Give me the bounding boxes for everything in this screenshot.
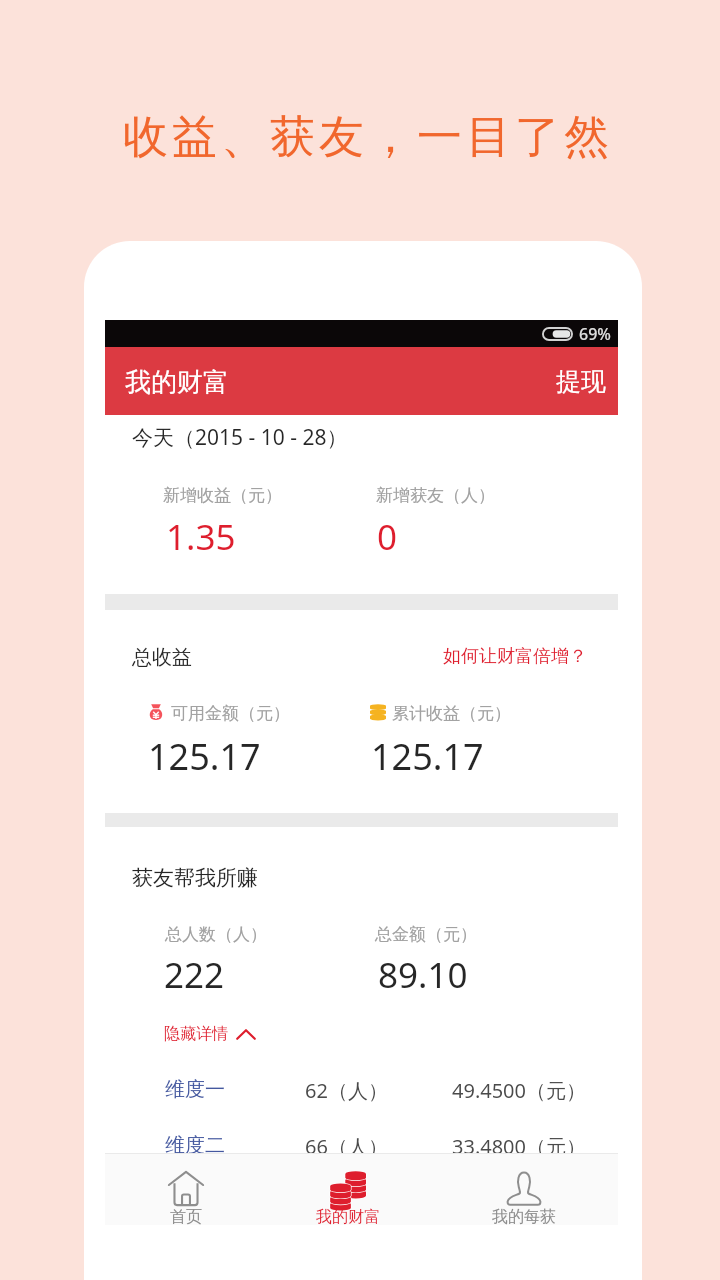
- button[interactable]: 提现: [530, 350, 618, 413]
- staticText: 维度一: [165, 1077, 225, 1102]
- staticText: 我的财富: [125, 366, 229, 399]
- staticText: 获友帮我所赚: [132, 865, 258, 891]
- staticText: 我的财富: [316, 1207, 380, 1225]
- staticText: 222: [164, 951, 225, 999]
- staticText: 总金额（元）: [375, 924, 477, 945]
- button[interactable]: 我的财富: [263, 1154, 433, 1225]
- staticText: 1.35: [166, 513, 236, 561]
- staticText: 33.4800（元）: [452, 1133, 586, 1160]
- staticText: 49.4500（元）: [452, 1077, 586, 1104]
- staticText: 收益、获友，一目了然: [8, 109, 720, 166]
- staticText: 今天（2015 - 10 - 28）: [132, 423, 348, 452]
- staticText: 提现: [556, 366, 606, 397]
- staticText: 125.17: [148, 732, 261, 781]
- staticText: 如何让财富倍增？: [443, 645, 587, 668]
- staticText: 89.10: [378, 951, 468, 999]
- staticText: 62（人）: [305, 1077, 388, 1104]
- button[interactable]: 如何让财富倍增？: [443, 645, 587, 668]
- button[interactable]: 隐藏详情: [164, 1024, 256, 1044]
- staticText: 我的每获: [492, 1207, 556, 1225]
- staticText: 125.17: [371, 732, 484, 781]
- staticText: 首页: [170, 1207, 202, 1225]
- staticText: 总人数（人）: [165, 924, 267, 945]
- staticText: 总收益: [132, 645, 192, 670]
- staticText: 累计收益（元）: [392, 703, 511, 724]
- staticText: 0: [377, 513, 398, 561]
- staticText: 可用金额（元）: [171, 703, 290, 724]
- button[interactable]: 我的每获: [439, 1154, 609, 1225]
- staticText: 维度二: [165, 1133, 225, 1158]
- staticText: 新增收益（元）: [163, 485, 282, 506]
- staticText: 隐藏详情: [164, 1024, 228, 1044]
- staticText: 新增获友（人）: [376, 485, 495, 506]
- button[interactable]: 首页: [105, 1154, 271, 1225]
- staticText: 66（人）: [305, 1133, 388, 1160]
- staticText: 69%: [579, 323, 611, 345]
